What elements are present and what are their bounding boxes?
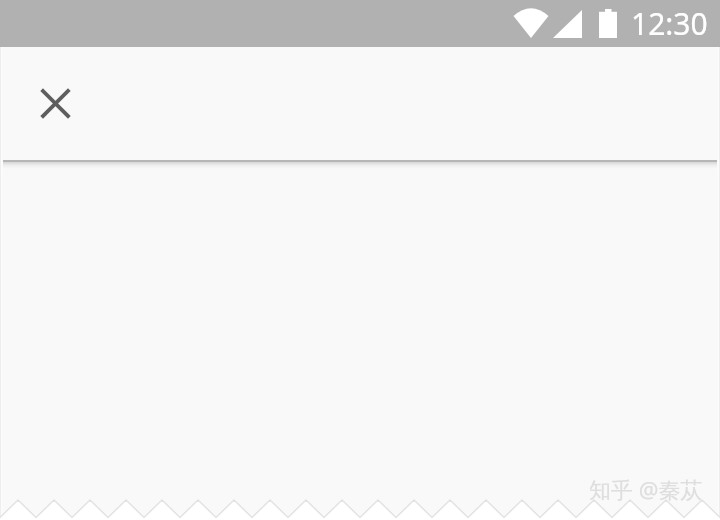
staticText: 12:30 [631,3,708,44]
button[interactable]: Close [20,68,91,139]
staticText: 知乎 @秦苁 [589,474,703,504]
